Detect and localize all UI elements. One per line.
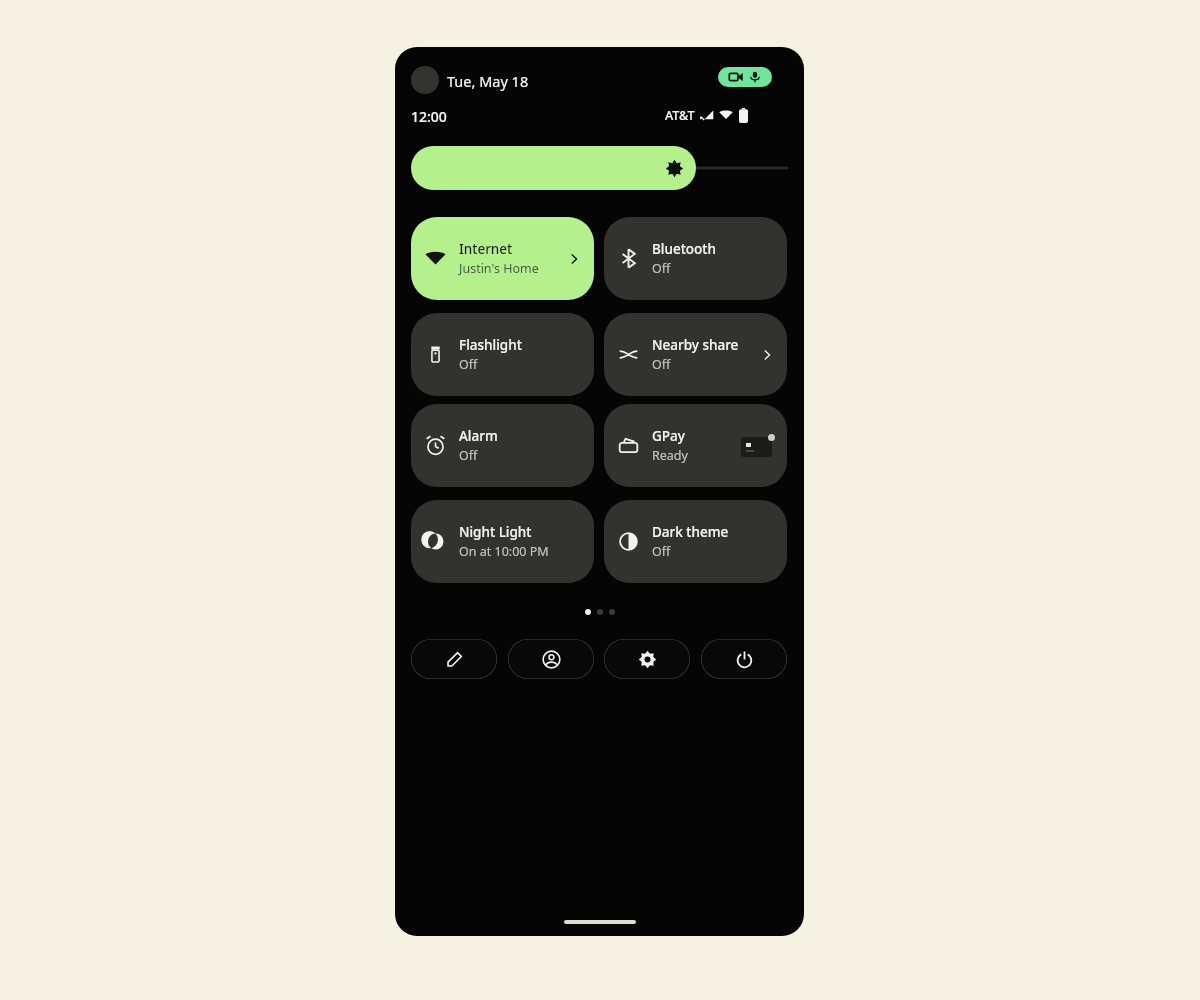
button[interactable]: Flashlight [411,313,594,396]
button[interactable]: Power [701,639,787,679]
staticText: Off [459,356,478,373]
staticText: 12:00 [411,107,447,126]
button[interactable]: GPay [604,404,787,487]
button[interactable]: Alarm [411,404,594,487]
staticText: AT&T [665,107,695,124]
button[interactable]: Bluetooth [604,217,787,300]
button[interactable]: Edit [411,639,497,679]
button[interactable]: Internet [411,217,594,300]
staticText: Off [652,260,671,277]
staticText: Night Light [459,523,532,541]
button[interactable]: Dark theme [604,500,787,583]
staticText: Ready [652,447,688,464]
button[interactable]: Settings [604,639,690,679]
button[interactable]: Brightness [411,146,696,190]
staticText: GPay [652,427,685,445]
staticText: Nearby share [652,336,739,354]
staticText: Alarm [459,427,498,445]
button[interactable]: Camera and microphone in use [718,67,772,87]
staticText: Flashlight [459,336,522,354]
staticText: Internet [459,240,513,258]
staticText: Off [652,543,671,560]
staticText: Tue, May 18 [447,71,529,91]
button[interactable]: Nearby share [604,313,787,396]
button[interactable]: Night Light [411,500,594,583]
staticText: Off [652,356,671,373]
staticText: On at 10:00 PM [459,543,549,560]
staticText: Bluetooth [652,240,716,258]
staticText: Justin's Home [459,260,539,277]
button[interactable]: User [508,639,594,679]
button[interactable]: Account avatar [411,66,439,94]
staticText: Off [459,447,478,464]
staticText: Dark theme [652,523,729,541]
